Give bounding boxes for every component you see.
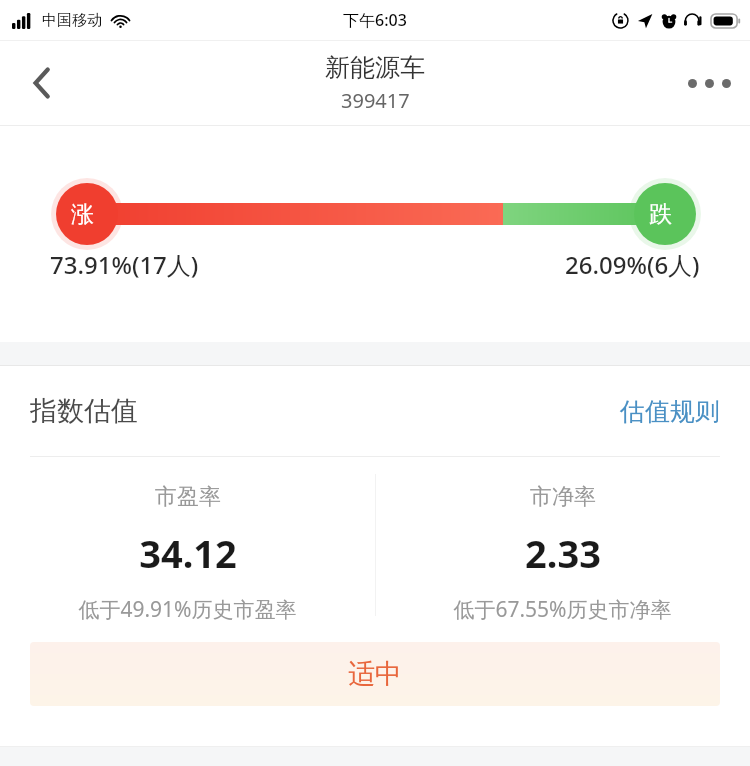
staticText: 34.12 — [139, 527, 237, 579]
button[interactable]: 市盈率 — [0, 457, 375, 632]
button[interactable]: 市净率 — [375, 457, 750, 632]
staticText: 低于67.55%历史市净率 — [453, 595, 672, 624]
staticText: 73.91%(17人) — [50, 248, 199, 281]
staticText: 下午6:03 — [343, 9, 407, 31]
button[interactable]: More options — [680, 54, 738, 112]
staticText: 市净率 — [530, 483, 596, 511]
button[interactable]: Back — [14, 55, 70, 111]
staticText: 估值规则 — [620, 396, 720, 427]
staticText: 新能源车 — [325, 52, 425, 83]
button[interactable]: 估值规则 — [590, 384, 750, 439]
staticText: 低于49.91%历史市盈率 — [78, 595, 297, 624]
button[interactable]: 适中 — [30, 642, 720, 706]
staticText: 市盈率 — [155, 483, 221, 511]
staticText: 中国移动 — [42, 11, 102, 30]
staticText: 适中 — [348, 657, 402, 691]
staticText: 2.33 — [525, 527, 601, 579]
staticText: 399417 — [341, 87, 410, 114]
staticText: 26.09%(6人) — [565, 248, 700, 281]
staticText: 指数估值 — [30, 394, 138, 428]
staticText: 跌 — [649, 200, 672, 229]
staticText: 涨 — [71, 200, 94, 229]
